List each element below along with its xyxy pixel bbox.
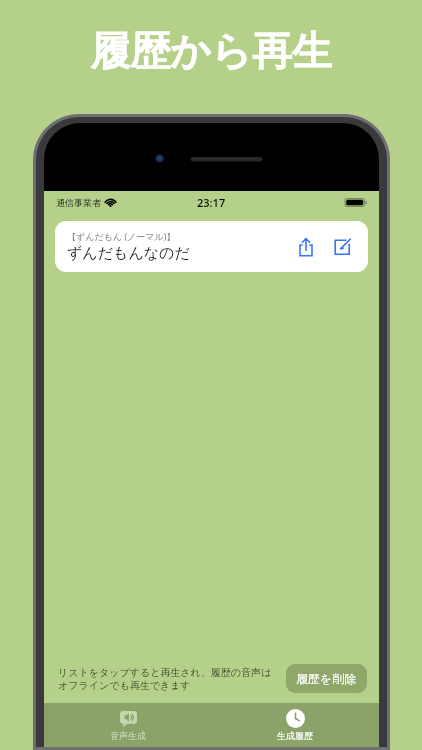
button[interactable]: Share [292, 237, 320, 257]
button[interactable]: 【ずんだもん (ノーマル)】 [55, 221, 368, 272]
button[interactable]: Edit [328, 237, 356, 257]
staticText: 音声生成 [110, 730, 146, 741]
staticText: リストをタップすると再生され、履歴の音声はオフラインでも再生できます [58, 666, 276, 692]
staticText: 履歴を削除 [296, 671, 357, 686]
staticText: 通信事業者 [56, 197, 101, 208]
staticText: 履歴から再生 [90, 26, 332, 76]
staticText: ずんだもんなのだ [67, 244, 190, 263]
staticText: 23:17 [197, 195, 226, 210]
button[interactable]: 履歴を削除 [286, 664, 367, 693]
staticText: 生成履歴 [277, 730, 313, 741]
button[interactable]: 生成履歴 [211, 703, 379, 747]
staticText: 【ずんだもん (ノーマル)】 [67, 230, 176, 242]
button[interactable]: 音声生成 [44, 703, 211, 747]
